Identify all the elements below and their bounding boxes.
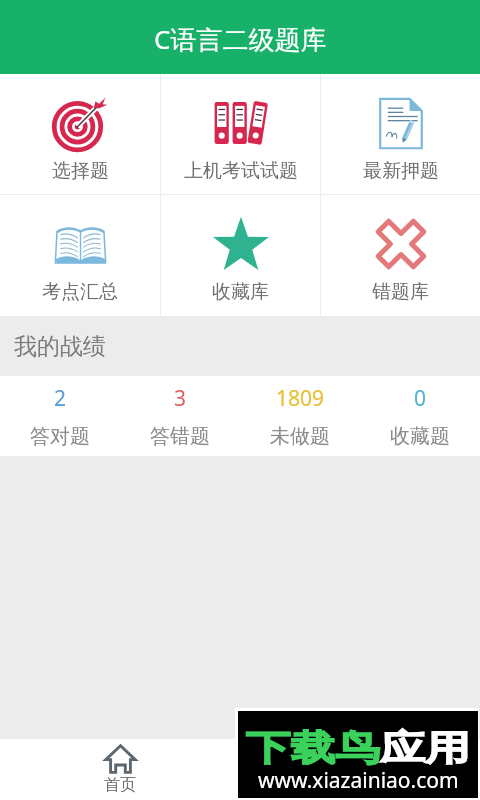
button[interactable]: 3 [120,376,240,456]
button[interactable]: 收藏库 [161,195,320,316]
button[interactable]: 最新押题 [321,74,480,194]
staticText: 收藏题 [390,424,450,449]
staticText: 下载鸟 [246,726,380,770]
staticText: C语言二级题库 [154,21,327,57]
other: Home [104,744,137,774]
staticText: 收藏库 [212,280,269,304]
button[interactable]: 选择题 [0,74,160,194]
staticText: 最新押题 [363,159,439,183]
staticText: 应用 [380,726,470,770]
staticText: 2 [54,384,67,413]
button[interactable]: 0 [360,376,480,456]
staticText: 0 [414,384,427,413]
staticText: 首页 [104,775,136,795]
staticText: 答对题 [30,424,90,449]
staticText: 选择题 [52,159,109,183]
button[interactable]: 2 [0,376,120,456]
staticText: 错题库 [372,280,429,304]
staticText: 1809 [276,384,325,413]
staticText: 未做题 [270,424,330,449]
staticText: 考点汇总 [42,280,118,304]
button[interactable]: Home [0,739,240,800]
staticText: 3 [174,384,187,413]
button[interactable]: 上机考试试题 [161,74,320,194]
staticText: www.xiazainiao.com [258,766,459,795]
staticText: 答错题 [150,424,210,449]
staticText: 我的战绩 [14,332,106,361]
button[interactable]: 考点汇总 [0,195,160,316]
button[interactable]: 错题库 [321,195,480,316]
button[interactable]: 1809 [240,376,360,456]
staticText: 上机考试试题 [184,159,298,183]
